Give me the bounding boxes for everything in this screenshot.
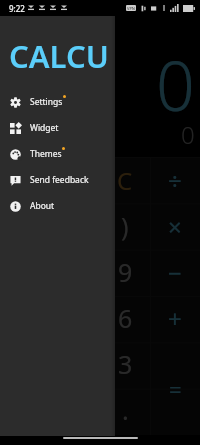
staticText: ± — [68, 163, 83, 197]
staticText: % — [15, 163, 36, 197]
button[interactable]: ÷ — [150, 157, 200, 203]
staticText: = — [169, 374, 182, 404]
staticText: 6 — [118, 301, 133, 335]
staticText: 9 — [118, 255, 133, 289]
button[interactable]: . — [100, 387, 150, 433]
staticText: . — [122, 393, 129, 427]
other: About — [10, 201, 21, 212]
button[interactable] — [150, 387, 200, 433]
button[interactable]: Widget — [0, 115, 115, 141]
staticText: VPN — [127, 6, 135, 11]
staticText: ) — [121, 209, 129, 243]
staticText: Themes — [30, 148, 62, 160]
staticText: 0 — [156, 38, 195, 131]
button[interactable]: About — [0, 193, 115, 219]
staticText: 9:22 — [9, 3, 25, 14]
staticText: 0 — [181, 118, 195, 151]
button[interactable]: C — [100, 157, 150, 203]
staticText: xʸ — [14, 209, 36, 243]
button[interactable]: Send feedback — [0, 167, 115, 193]
button[interactable]: ± — [50, 157, 100, 203]
staticText: About — [30, 200, 55, 212]
staticText: + — [168, 302, 182, 335]
button[interactable]: = — [150, 343, 200, 435]
button[interactable]: ) — [100, 203, 150, 249]
other: Send feedback — [10, 175, 21, 186]
button[interactable]: Settings — [0, 89, 115, 115]
button[interactable]: 6 — [100, 295, 150, 341]
button[interactable]: × — [150, 203, 200, 249]
button[interactable]: − — [150, 249, 200, 295]
button[interactable]: 9 — [100, 249, 150, 295]
staticText: Settings — [30, 96, 63, 108]
other: Settings — [10, 97, 21, 108]
staticText: Widget — [30, 122, 59, 134]
button[interactable]: % — [0, 157, 50, 203]
other: Themes — [10, 149, 21, 160]
other: Widget — [10, 123, 21, 134]
button[interactable]: + — [150, 295, 200, 341]
staticText: C — [117, 164, 133, 197]
staticText: − — [168, 256, 182, 289]
button[interactable]: Themes — [0, 141, 115, 167]
staticText: ÷ — [168, 164, 182, 197]
staticText: Send feedback — [30, 174, 89, 186]
button[interactable]: 3 — [100, 341, 150, 387]
staticText: CALCULATOR — [9, 35, 124, 77]
staticText: 3 — [118, 347, 133, 381]
button[interactable]: xʸ — [0, 203, 50, 249]
staticText: × — [168, 210, 182, 243]
button[interactable]: ( — [50, 203, 100, 249]
